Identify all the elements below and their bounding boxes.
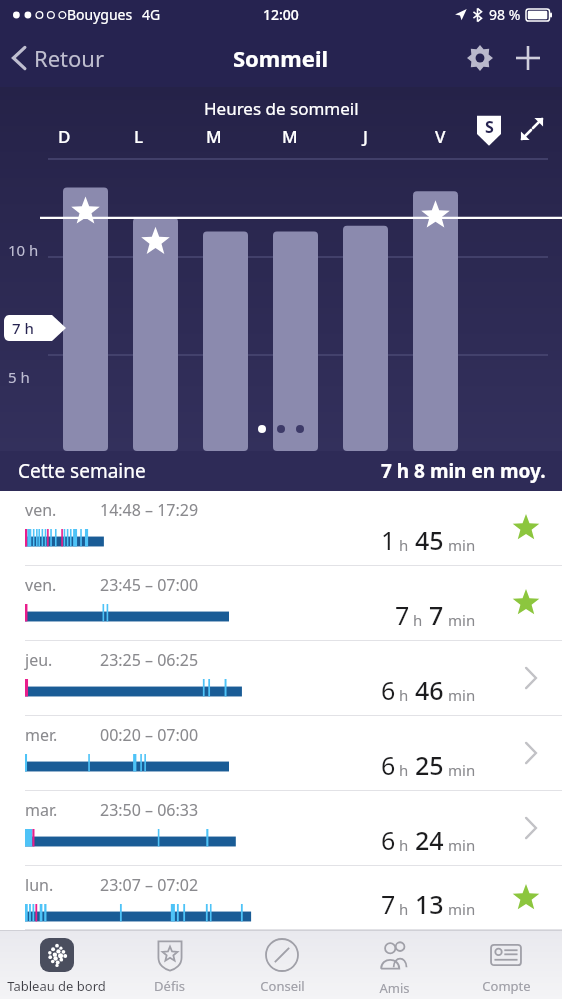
button[interactable]: Défis (113, 930, 226, 999)
staticText: 4G (142, 5, 161, 24)
staticText: h (413, 610, 423, 630)
button[interactable]: mer. (0, 716, 562, 791)
staticText: 25 (415, 748, 444, 782)
button[interactable]: Retour (0, 37, 117, 79)
staticText: 12:00 (263, 5, 299, 24)
staticText: 23:07 – 07:02 (100, 874, 199, 896)
button[interactable]: mar. (0, 791, 562, 866)
staticText: 98 % (489, 5, 521, 24)
button[interactable]: lun. (0, 866, 562, 930)
staticText: 13 (415, 887, 444, 921)
staticText: 23:50 – 06:33 (100, 799, 199, 821)
staticText: Sommeil (233, 43, 329, 73)
staticText: 7 (429, 598, 444, 632)
button[interactable]: Conseil (226, 930, 338, 999)
staticText: h (399, 535, 409, 555)
button[interactable]: Amis (338, 930, 450, 999)
staticText: jeu. (25, 649, 53, 671)
staticText: 23:25 – 06:25 (100, 649, 199, 671)
staticText: 24 (415, 823, 444, 857)
staticText: 1 (381, 523, 396, 557)
staticText: 23:45 – 07:00 (100, 574, 199, 596)
staticText: 5 h (8, 367, 30, 387)
button[interactable]: Add (504, 34, 552, 82)
button[interactable]: Compte (450, 930, 562, 999)
button[interactable]: ven. (0, 491, 562, 566)
staticText: h (399, 835, 409, 855)
staticText: D (58, 125, 71, 148)
staticText: Tableau de bord (7, 977, 106, 995)
staticText: Heures de sommeil (204, 97, 359, 120)
staticText: 6 (381, 823, 396, 857)
button[interactable]: S (474, 113, 504, 147)
staticText: 7 h (12, 318, 34, 338)
staticText: h (399, 899, 409, 919)
staticText: Bouygues (67, 5, 133, 24)
staticText: 6 (381, 748, 396, 782)
button[interactable]: jeu. (0, 641, 562, 716)
button[interactable]: ven. (0, 566, 562, 641)
staticText: ven. (25, 574, 57, 596)
staticText: lun. (25, 874, 54, 896)
staticText: M (206, 125, 222, 148)
staticText: h (399, 685, 409, 705)
staticText: min (448, 835, 476, 855)
staticText: 46 (415, 673, 444, 707)
staticText: M (282, 125, 298, 148)
staticText: h (399, 760, 409, 780)
staticText: 7 (395, 598, 410, 632)
staticText: min (448, 610, 476, 630)
staticText: S (485, 116, 494, 138)
staticText: Compte (482, 977, 531, 995)
staticText: min (448, 899, 476, 919)
staticText: Retour (34, 43, 105, 73)
staticText: mer. (25, 724, 58, 746)
staticText: 45 (415, 523, 444, 557)
button[interactable]: Expand chart (516, 113, 548, 145)
staticText: J (363, 125, 368, 148)
staticText: 6 (381, 673, 396, 707)
staticText: V (435, 125, 446, 148)
staticText: Conseil (260, 977, 305, 995)
staticText: 14:48 – 17:29 (100, 499, 199, 521)
staticText: Amis (379, 979, 410, 997)
staticText: 7 h 8 min en moy. (381, 458, 546, 484)
button[interactable]: Tableau de bord (0, 930, 113, 999)
staticText: min (448, 760, 476, 780)
staticText: mar. (25, 799, 58, 821)
staticText: 10 h (8, 240, 39, 260)
staticText: 00:20 – 07:00 (100, 724, 199, 746)
staticText: min (448, 535, 476, 555)
staticText: ven. (25, 499, 57, 521)
staticText: Défis (154, 977, 185, 995)
staticText: L (134, 125, 144, 148)
staticText: Cette semaine (18, 458, 146, 484)
button[interactable]: Cette semaine (0, 451, 562, 491)
staticText: min (448, 685, 476, 705)
staticText: 7 (381, 887, 396, 921)
button[interactable]: Settings (456, 34, 504, 82)
